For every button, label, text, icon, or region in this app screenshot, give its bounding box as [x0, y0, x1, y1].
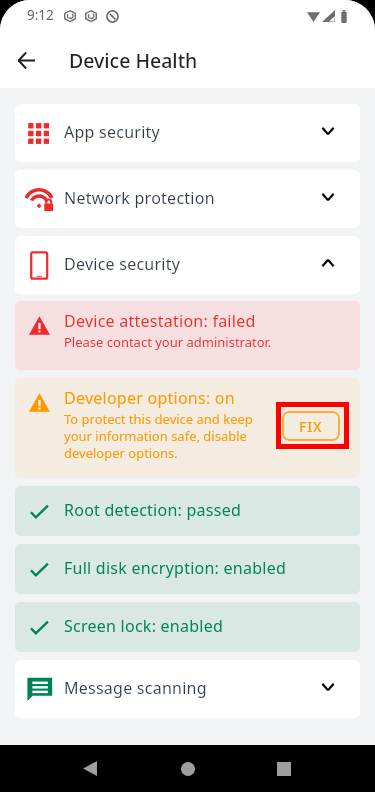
staticText: Device security — [64, 253, 320, 275]
button[interactable]: Back — [2, 36, 50, 84]
staticText: Root detection: passed — [64, 499, 242, 521]
other: Collapse — [320, 255, 336, 271]
button[interactable]: Screen lock: enabled — [15, 602, 360, 652]
staticText: Network protection — [64, 187, 320, 209]
button[interactable]: Device security — [15, 236, 360, 294]
staticText: Please contact your administrator. — [64, 333, 272, 351]
button[interactable]: Home — [164, 745, 212, 792]
staticText: Device Health — [69, 47, 198, 74]
staticText: Message scanning — [64, 677, 320, 699]
staticText: Developer options: on — [64, 387, 235, 409]
other: Expand — [320, 123, 336, 139]
button[interactable]: Message scanning — [15, 660, 360, 718]
button[interactable]: Device attestation: failed — [15, 301, 360, 370]
other: Expand — [320, 679, 336, 695]
button[interactable]: Back — [66, 745, 114, 792]
staticText: To protect this device and keep your inf… — [64, 410, 254, 462]
button[interactable]: Full disk encryption: enabled — [15, 544, 360, 594]
staticText: FIX — [299, 417, 323, 436]
button[interactable]: App security — [15, 104, 360, 162]
button[interactable]: FIX — [282, 411, 340, 441]
other: Expand — [320, 189, 336, 205]
staticText: Screen lock: enabled — [64, 615, 224, 637]
staticText: Full disk encryption: enabled — [64, 557, 287, 579]
staticText: App security — [64, 121, 320, 143]
staticText: Device attestation: failed — [64, 310, 256, 332]
staticText: 9:12 — [27, 6, 54, 24]
button[interactable]: Recent apps — [260, 745, 308, 792]
button[interactable]: Root detection: passed — [15, 486, 360, 536]
button[interactable]: Network protection — [15, 170, 360, 228]
